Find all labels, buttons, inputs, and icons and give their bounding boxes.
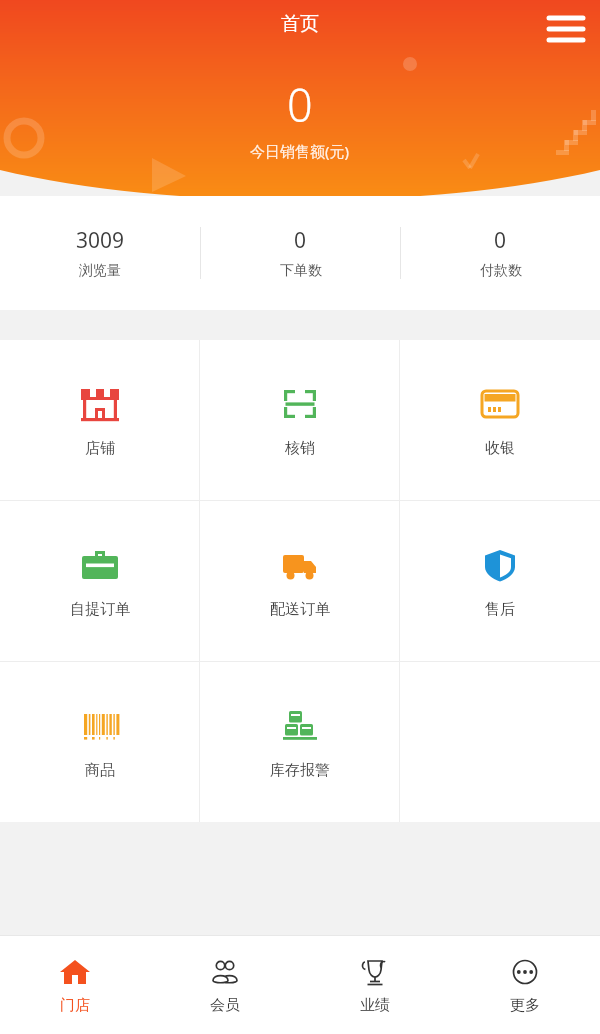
- button[interactable]: 售后: [400, 501, 600, 661]
- button[interactable]: 更多: [450, 936, 600, 1034]
- staticText: 业绩: [360, 996, 390, 1015]
- staticText: 售后: [485, 600, 515, 619]
- staticText: 3009: [76, 226, 125, 255]
- button[interactable]: 收银: [400, 340, 600, 500]
- button[interactable]: 0: [201, 196, 400, 310]
- staticText: 更多: [510, 996, 540, 1015]
- staticText: 库存报警: [270, 761, 330, 780]
- staticText: 店铺: [85, 439, 115, 458]
- staticText: 浏览量: [79, 262, 121, 280]
- staticText: 会员: [210, 996, 240, 1015]
- staticText: 0: [287, 74, 313, 135]
- button[interactable]: 会员: [150, 936, 300, 1034]
- button[interactable]: 3009: [0, 196, 200, 310]
- button[interactable]: 核销: [200, 340, 400, 500]
- staticText: 配送订单: [270, 600, 330, 619]
- staticText: 收银: [485, 439, 515, 458]
- staticText: 今日销售额(元): [250, 141, 350, 161]
- button[interactable]: 业绩: [300, 936, 450, 1034]
- button[interactable]: 库存报警: [200, 662, 400, 822]
- button[interactable]: 商品: [0, 662, 200, 822]
- staticText: 0: [294, 226, 307, 255]
- staticText: 下单数: [280, 262, 322, 280]
- button[interactable]: Menu: [540, 2, 592, 54]
- staticText: 核销: [285, 439, 315, 458]
- staticText: 首页: [281, 12, 319, 36]
- staticText: 0: [494, 226, 507, 255]
- staticText: 门店: [60, 996, 90, 1015]
- button[interactable]: 0: [401, 196, 600, 310]
- button[interactable]: 店铺: [0, 340, 200, 500]
- button[interactable]: 配送订单: [200, 501, 400, 661]
- button[interactable]: 门店: [0, 936, 150, 1034]
- staticText: 付款数: [480, 262, 522, 280]
- button[interactable]: 自提订单: [0, 501, 200, 661]
- staticText: 商品: [85, 761, 115, 780]
- staticText: 自提订单: [70, 600, 130, 619]
